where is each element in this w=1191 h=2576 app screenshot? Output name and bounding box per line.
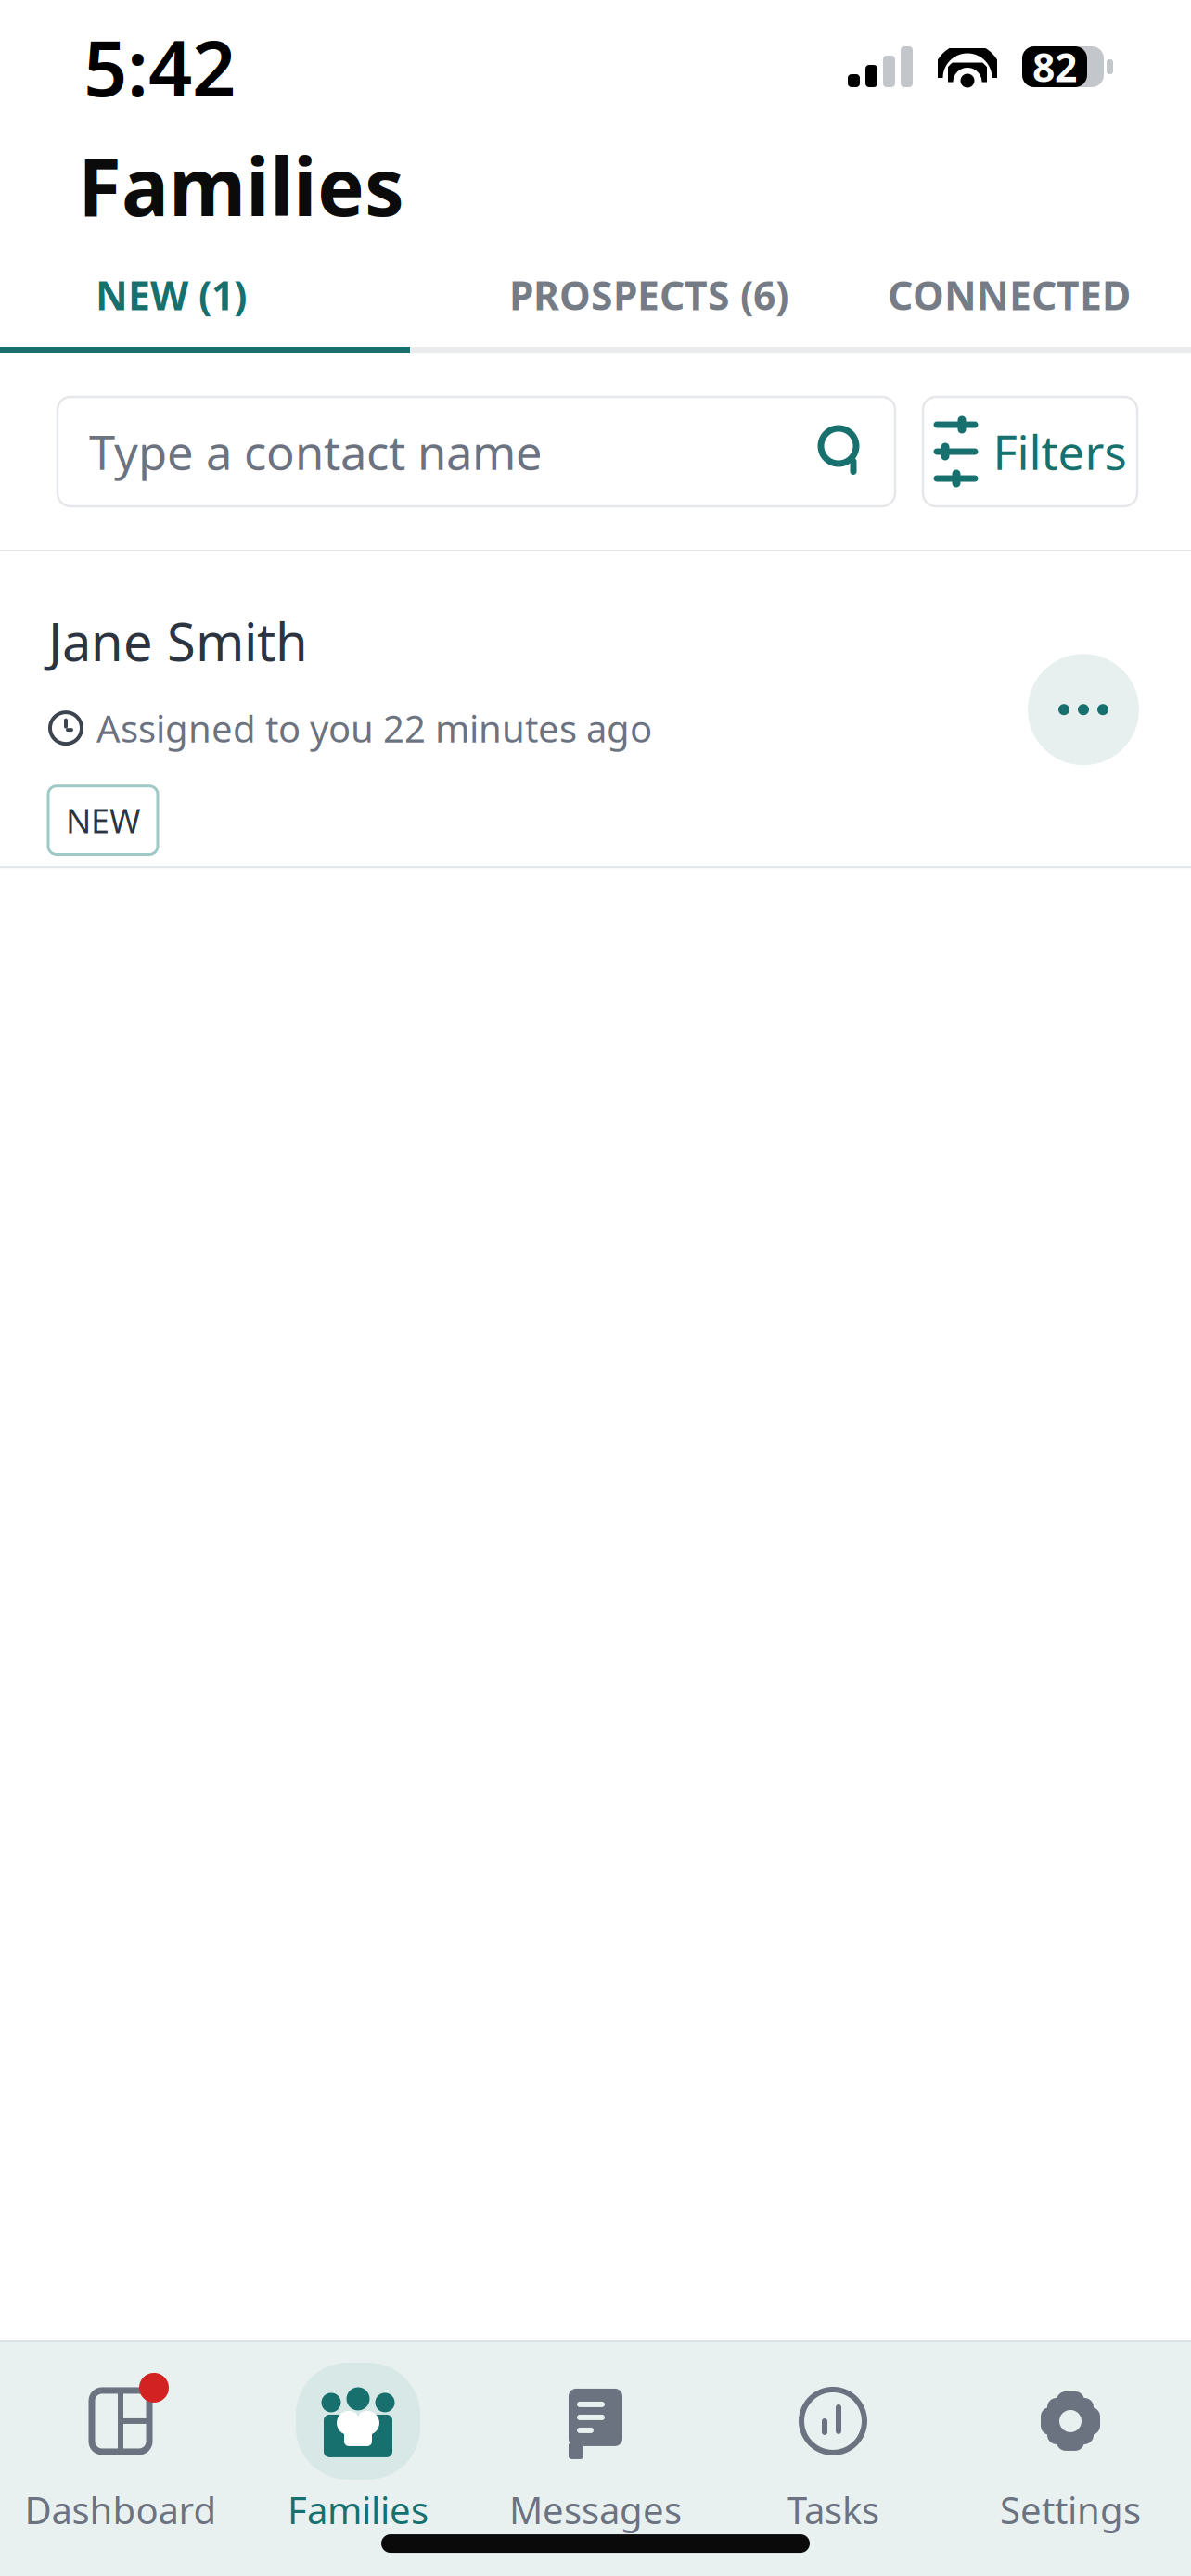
staticText: Assigned to you 22 minutes ago: [96, 703, 652, 753]
staticText: NEW (1): [96, 269, 247, 321]
button[interactable]: Tasks: [714, 2363, 952, 2534]
button[interactable]: Type a contact name: [58, 397, 895, 506]
staticText: Type a contact name: [89, 420, 543, 483]
staticText: PROSPECTS (6): [509, 269, 788, 321]
staticText: Dashboard: [25, 2485, 217, 2534]
staticText: Messages: [509, 2485, 682, 2534]
staticText: Tasks: [787, 2485, 879, 2534]
staticText: 82: [1032, 41, 1077, 93]
button[interactable]: More options: [1028, 654, 1139, 765]
staticText: NEW: [66, 798, 140, 842]
staticText: Filters: [993, 420, 1127, 483]
button[interactable]: Settings: [952, 2363, 1189, 2534]
button[interactable]: Families: [239, 2363, 477, 2534]
staticText: Families: [288, 2485, 429, 2534]
button[interactable]: Filters: [923, 397, 1137, 506]
staticText: CONNECTED: [888, 269, 1131, 321]
staticText: 5:42: [83, 16, 236, 118]
button[interactable]: Jane Smith: [0, 551, 1191, 868]
button[interactable]: PROSPECTS (6): [410, 243, 888, 347]
button[interactable]: Dashboard: [2, 2363, 239, 2534]
staticText: Jane Smith: [48, 607, 308, 676]
staticText: Settings: [1000, 2485, 1141, 2534]
staticText: Families: [78, 133, 404, 238]
button[interactable]: CONNECTED: [888, 243, 1191, 347]
button[interactable]: NEW (1): [0, 243, 410, 347]
button[interactable]: Messages: [477, 2363, 714, 2534]
